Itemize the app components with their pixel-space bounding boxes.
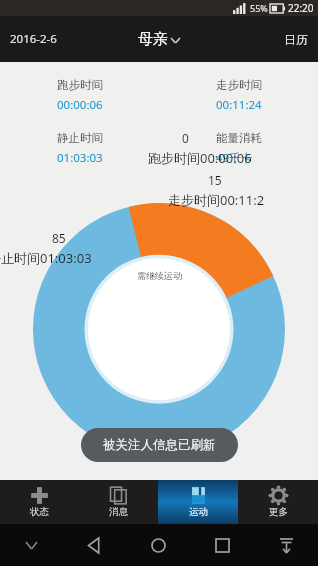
staticText: 走步时间00:11:2: [168, 191, 265, 209]
staticText: 状态: [30, 506, 49, 518]
staticText: 跑步时间00:00:06: [148, 149, 252, 167]
staticText: 运动: [189, 506, 208, 518]
staticText: 静止时间: [57, 131, 103, 145]
staticText: 日历: [284, 32, 308, 47]
staticText: 01:03:03: [57, 150, 103, 166]
staticText: 跑步时间: [57, 78, 103, 92]
staticText: 15: [208, 172, 222, 188]
button[interactable]: Recents: [190, 524, 254, 566]
staticText: 22:20: [288, 1, 314, 15]
button[interactable]: 母亲: [128, 24, 190, 55]
staticText: 走步时间: [216, 78, 262, 92]
button[interactable]: 日历: [274, 24, 318, 55]
staticText: 49千卡: [216, 150, 253, 166]
staticText: 母亲: [138, 30, 168, 49]
button[interactable]: 状态: [0, 480, 79, 524]
button[interactable]: Home: [126, 524, 190, 566]
button[interactable]: 运动: [158, 480, 238, 524]
button[interactable]: 消息: [79, 480, 158, 524]
staticText: 能量消耗: [216, 131, 262, 145]
staticText: 0: [182, 130, 189, 146]
button[interactable]: Hide: [0, 524, 63, 566]
staticText: 00:00:06: [57, 97, 103, 113]
staticText: 85: [52, 230, 66, 246]
staticText: 00:11:24: [216, 97, 262, 113]
button[interactable]: Download: [254, 524, 318, 566]
button[interactable]: 2016-2-6: [0, 23, 67, 55]
button[interactable]: 更多: [238, 480, 318, 524]
staticText: 消息: [109, 506, 128, 518]
staticText: 55%: [250, 2, 268, 14]
staticText: 更多: [269, 506, 288, 518]
staticText: 2016-2-6: [10, 31, 57, 47]
staticText: 静止时间01:03:03: [0, 249, 92, 267]
button[interactable]: Back: [63, 524, 126, 566]
button[interactable]: 被关注人信息已刷新: [81, 428, 238, 462]
staticText: 被关注人信息已刷新: [103, 437, 216, 453]
staticText: 需继续运动: [137, 270, 182, 281]
